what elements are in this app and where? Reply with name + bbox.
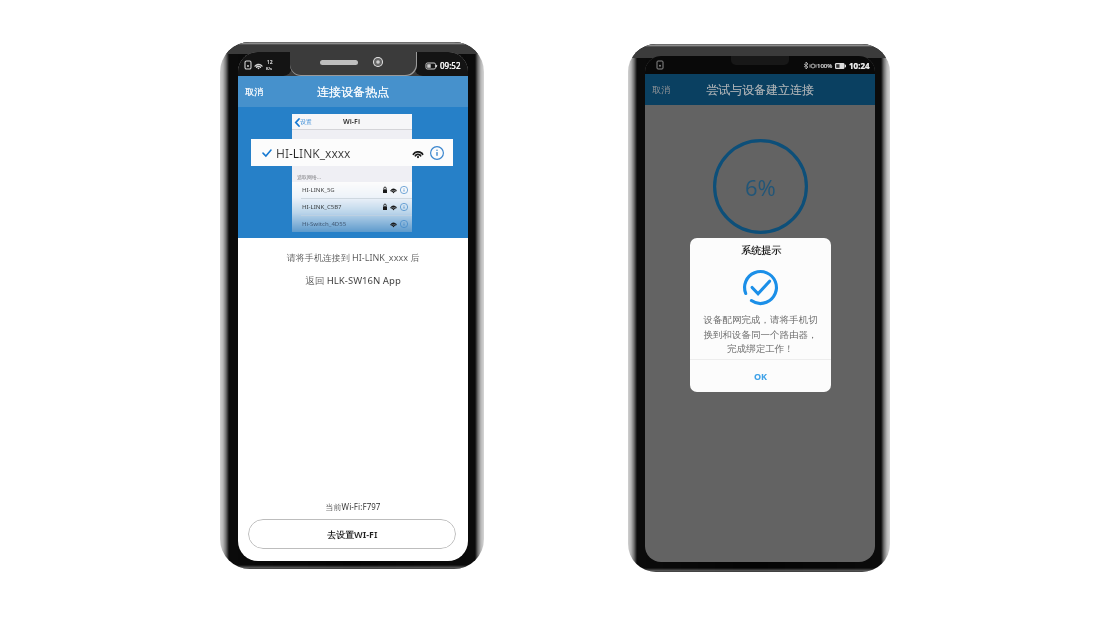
staticText: 100% (817, 62, 833, 70)
staticText: 尝试与设备建立连接 (706, 82, 814, 97)
staticText: 系统提示 (741, 244, 781, 257)
staticText: 10:24 (849, 60, 870, 71)
staticText: HI-LINK_C5B7 (302, 203, 342, 211)
staticText: Hi-Switch_4D55 (302, 220, 347, 228)
staticText: 返回 HLK-SW16N App (238, 274, 468, 287)
staticText: HI-LINK_5G (302, 186, 335, 194)
staticText: K/s (266, 66, 273, 71)
button[interactable]: Hi-Switch_4D55 (292, 216, 412, 232)
staticText: 选取网络… (297, 174, 321, 181)
staticText: 去设置WI-FI (327, 528, 378, 540)
button[interactable]: HI-LINK_C5B7 (292, 199, 412, 215)
staticText: 设备配网完成，请将手机切 换到和设备同一个路由器， 完成绑定工作！ (690, 314, 831, 355)
button[interactable]: HI-LINK_xxxx (251, 139, 453, 166)
staticText: Wi-Fi (343, 117, 361, 127)
staticText: OK (754, 370, 768, 382)
staticText: HI-LINK_xxxx (276, 145, 351, 161)
button[interactable]: OK (690, 360, 831, 392)
staticText: 请将手机连接到 HI-LINK_xxxx 后 (238, 251, 468, 263)
staticText: 当前Wi-Fi:F797 (238, 501, 468, 512)
button[interactable]: 取消 (652, 84, 670, 95)
button[interactable]: 去设置WI-FI (248, 519, 456, 549)
staticText: 6% (745, 172, 776, 202)
staticText: 09:52 (440, 60, 461, 71)
staticText: 12 (267, 59, 273, 66)
staticText: 连接设备热点 (317, 84, 389, 99)
button[interactable]: 取消 (245, 86, 263, 97)
button[interactable]: HI-LINK_5G (292, 182, 412, 198)
staticText: 设置 (300, 118, 312, 126)
